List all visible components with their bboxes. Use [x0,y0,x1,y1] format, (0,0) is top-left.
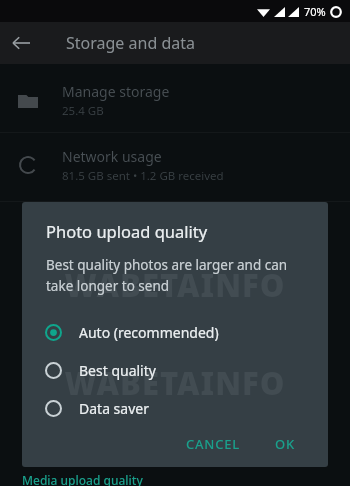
button[interactable]: Network usage [0,139,350,191]
staticText: 25.4 GB [62,103,104,119]
button[interactable]: Back [0,22,42,64]
staticText: OK [275,435,296,449]
staticText: Manage storage [62,82,170,101]
staticText: 81.5 GB sent • 1.2 GB received [62,168,224,184]
button[interactable]: CANCEL [176,427,251,457]
button[interactable]: Auto (recommended) [22,313,328,351]
staticText: Auto (recommended) [79,323,219,342]
staticText: CANCEL [186,435,241,449]
staticText: Network usage [62,147,162,166]
staticText: WABETAINFO [22,362,328,404]
staticText: Best quality [79,361,156,380]
staticText: Best quality photos are larger and can t… [46,256,308,295]
staticText: 70% [304,4,326,19]
button[interactable]: Data saver [22,389,328,427]
staticText: WABETAINFO [22,264,328,306]
staticText: Photo upload quality [46,220,208,242]
staticText: Storage and data [66,32,195,54]
button[interactable]: Manage storage [0,74,350,126]
staticText: Data saver [79,399,149,418]
button[interactable]: OK [265,427,306,457]
button[interactable]: Best quality [22,351,328,389]
staticText: Media upload quality [22,472,143,486]
